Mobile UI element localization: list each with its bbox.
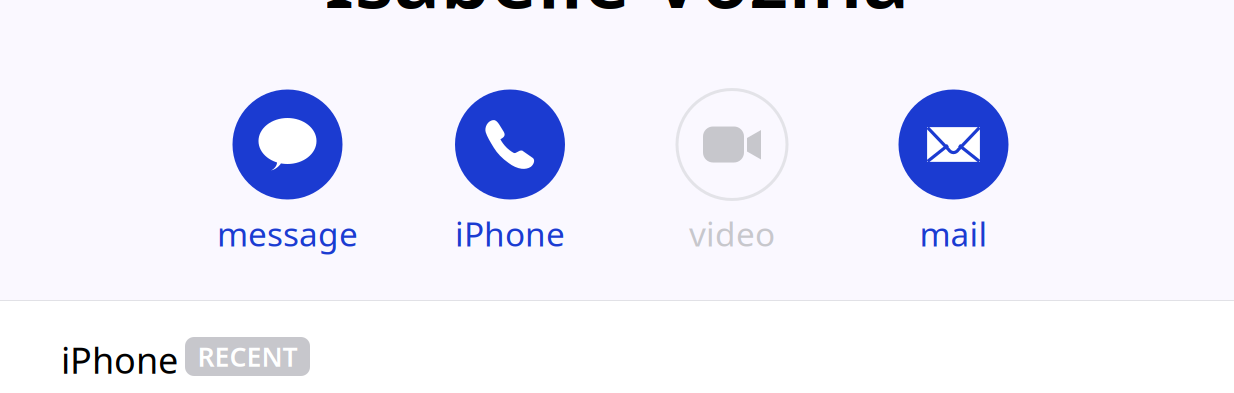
staticText: mail (919, 211, 987, 256)
staticText: iPhone (61, 336, 178, 384)
staticText: RECENT (197, 339, 297, 374)
staticText: message (217, 211, 358, 256)
button[interactable]: mail (858, 89, 1048, 261)
button[interactable]: video (637, 89, 827, 261)
staticText: iPhone (455, 211, 565, 256)
button[interactable]: iPhone (61, 301, 1234, 393)
staticText: Isabelle Vozina (324, 0, 909, 30)
staticText: video (689, 211, 775, 256)
button[interactable]: iPhone (415, 89, 605, 261)
button[interactable]: message (192, 89, 382, 261)
